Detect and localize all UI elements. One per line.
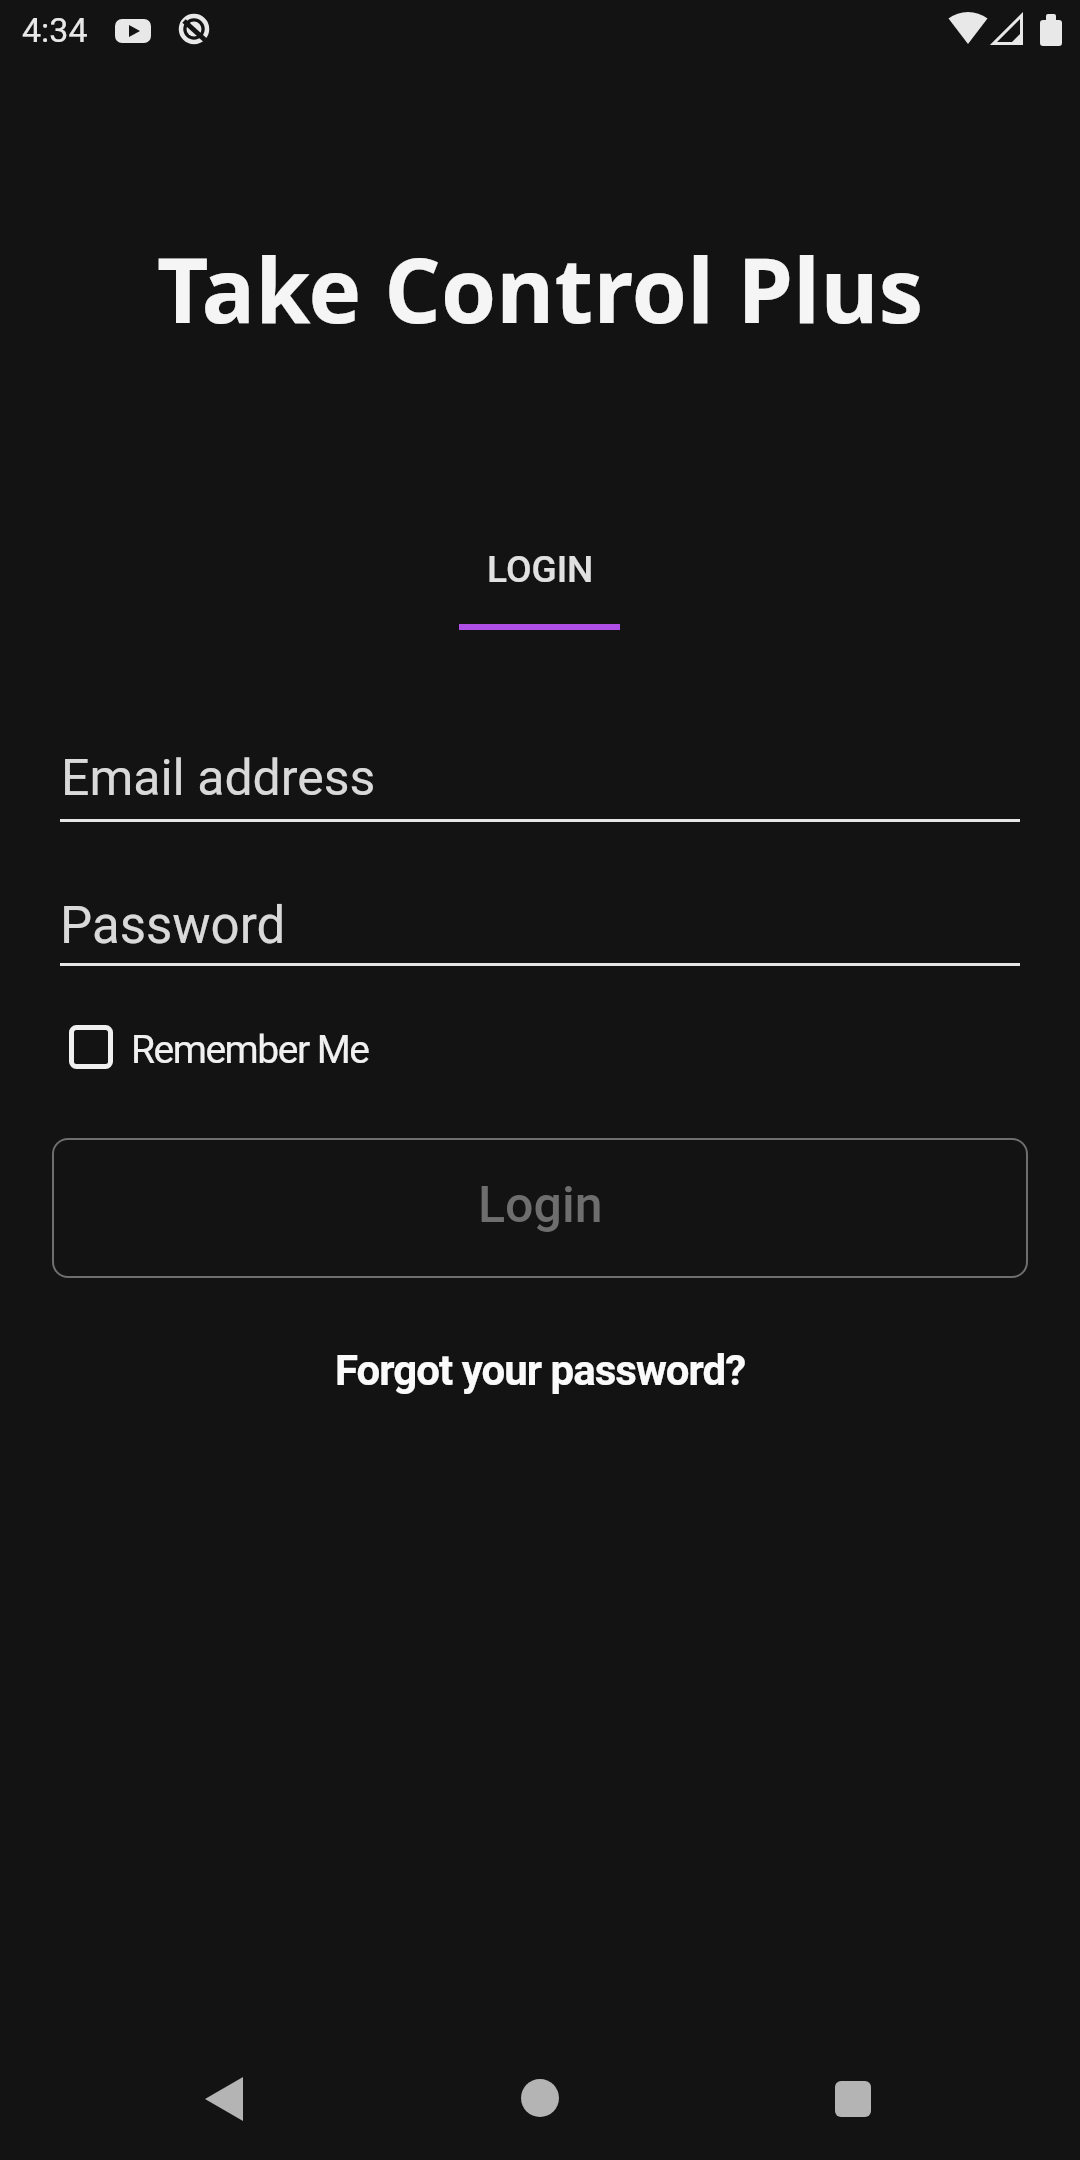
staticText: 4:34 [22,10,88,50]
staticText: Forgot your password? [335,1346,746,1395]
button[interactable] [813,2059,893,2139]
staticText: Email address [61,749,376,808]
staticText: LOGIN [487,548,594,591]
staticText: Take Control Plus [157,228,924,349]
button[interactable] [500,2058,580,2138]
staticText: Password [60,896,286,956]
button[interactable] [185,2060,265,2140]
staticText: Login [478,1176,603,1235]
button[interactable]: Login [52,1138,1028,1278]
button[interactable]: Remember Me [55,1010,385,1085]
button[interactable]: Email address [60,730,1020,822]
staticText: Remember Me [131,1027,369,1073]
button[interactable]: LOGIN [430,520,650,640]
button[interactable]: Forgot your password? [280,1330,800,1410]
button[interactable]: Password [60,874,1020,966]
